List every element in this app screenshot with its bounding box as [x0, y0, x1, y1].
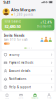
button[interactable]: Account details [2, 67, 54, 75]
staticText: 1,280 points [14, 13, 33, 16]
staticText: this month [37, 25, 52, 28]
staticText: +12.4% [41, 21, 52, 24]
staticText: Invite friends [4, 34, 24, 37]
staticText: Account details [9, 69, 30, 73]
button[interactable]: Cards [14, 91, 28, 100]
staticText: Profile [46, 97, 51, 99]
button[interactable]: Notifications [2, 75, 54, 83]
staticText: Rewards [31, 97, 38, 99]
button[interactable]: Home [0, 91, 14, 100]
staticText: Earn $10 for each [4, 38, 28, 41]
button[interactable]: Help & support [2, 83, 54, 91]
button[interactable]: Security [2, 51, 54, 59]
button[interactable]: Payment methods [2, 59, 54, 67]
button[interactable]: Profile [42, 91, 56, 100]
staticText: 9:41 [3, 0, 10, 5]
staticText: Cards [18, 97, 23, 99]
staticText: Total balance [4, 20, 21, 23]
staticText: Security [9, 53, 19, 56]
button[interactable]: Invite friends [0, 32, 56, 49]
staticText: Alex Morgan [11, 7, 36, 12]
staticText: Payment methods [9, 61, 33, 64]
staticText: $2,480.50 [4, 24, 20, 29]
button[interactable]: Rewards [28, 91, 42, 100]
staticText: Notifications [9, 77, 26, 81]
button[interactable]: Total balance [0, 18, 56, 30]
staticText: Home [5, 97, 9, 99]
button[interactable]: Profile [3, 8, 10, 15]
staticText: Help & support [9, 85, 31, 89]
